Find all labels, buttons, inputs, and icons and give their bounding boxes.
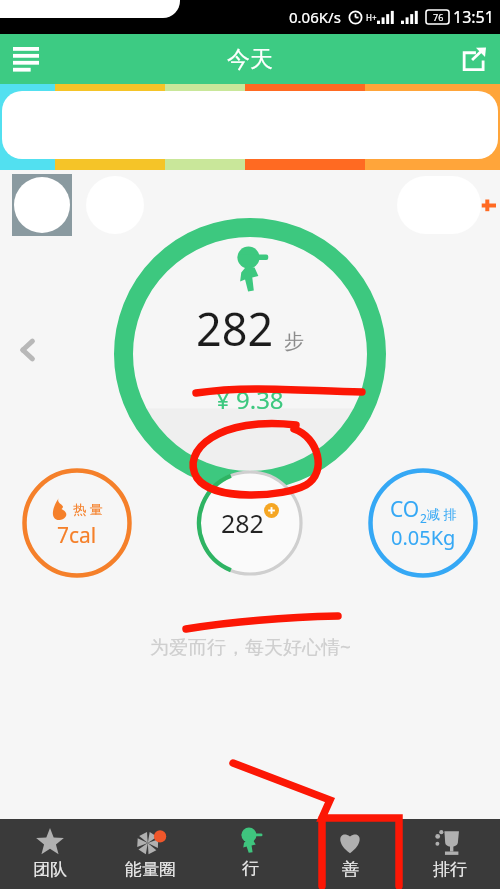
button[interactable]: Previous day xyxy=(6,328,50,372)
staticText: ¥ 9.38 xyxy=(216,383,284,416)
button[interactable] xyxy=(12,174,72,236)
button[interactable]: CO xyxy=(368,468,478,578)
staticText: 善 xyxy=(342,859,359,880)
button[interactable]: 排行 xyxy=(400,819,500,889)
staticText: 步 xyxy=(284,329,304,354)
staticText: 13:51 xyxy=(453,6,494,28)
button[interactable]: Share xyxy=(448,34,500,84)
button[interactable]: 行 xyxy=(200,819,300,889)
staticText: 减 排 xyxy=(427,505,457,523)
staticText: 热 量 xyxy=(73,500,103,518)
staticText: 今天 xyxy=(227,45,273,74)
staticText: 2 xyxy=(420,510,427,526)
staticText: 282 xyxy=(196,298,274,359)
staticText: 76 xyxy=(433,11,444,23)
button[interactable] xyxy=(2,91,498,159)
staticText: 能量圈 xyxy=(125,859,176,880)
button[interactable]: 善 xyxy=(300,819,400,889)
button[interactable] xyxy=(397,176,481,234)
staticText: 7cal xyxy=(57,521,97,550)
staticText: 0.06K/s xyxy=(289,7,341,27)
button[interactable] xyxy=(86,176,144,234)
button[interactable]: 团队 xyxy=(0,819,100,889)
button[interactable]: 热 量 xyxy=(22,468,132,578)
staticText: 团队 xyxy=(33,859,67,880)
staticText: H+ xyxy=(366,12,377,23)
button[interactable]: 282 xyxy=(196,469,304,577)
button[interactable]: 282 xyxy=(114,218,386,490)
staticText: 行 xyxy=(242,858,259,879)
button[interactable]: Menu xyxy=(0,34,52,84)
button[interactable]: 能量圈 xyxy=(100,819,200,889)
staticText: CO xyxy=(390,495,420,524)
staticText: 282 xyxy=(221,506,264,540)
staticText: 排行 xyxy=(433,859,467,880)
staticText: 0.05Kg xyxy=(391,524,456,551)
staticText: 为爱而行，每天好心情~ xyxy=(150,634,351,660)
